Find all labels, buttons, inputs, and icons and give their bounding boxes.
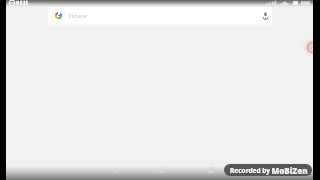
staticText: Recorded by [229, 166, 271, 175]
button[interactable]: Recents [199, 162, 223, 180]
button[interactable]: Поиск [48, 7, 272, 24]
button[interactable]: Home [150, 162, 174, 180]
staticText: Поиск [69, 12, 87, 20]
button[interactable]: Recorder [303, 38, 320, 57]
button[interactable]: Voice search [261, 11, 270, 20]
staticText: MoBiZen [271, 165, 308, 176]
button[interactable]: Back [102, 162, 126, 180]
